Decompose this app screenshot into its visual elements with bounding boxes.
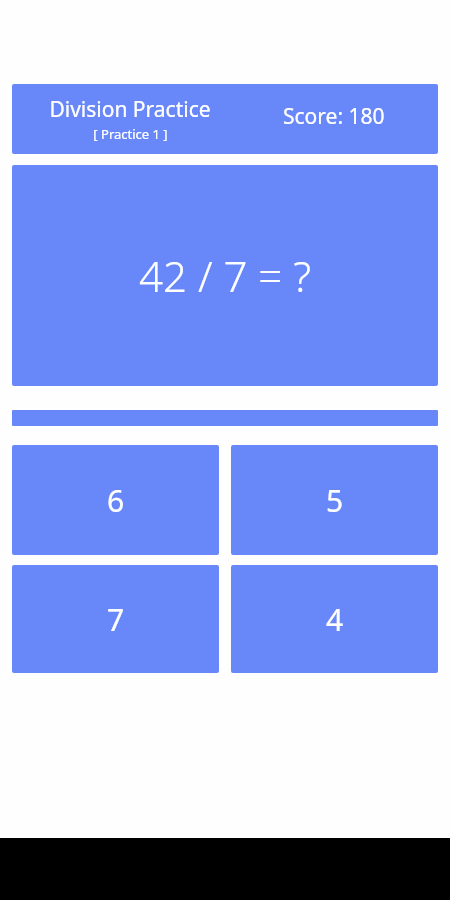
button[interactable]: Division Practice [12, 84, 438, 154]
button[interactable]: 42 / 7 = ? [12, 165, 438, 386]
button[interactable]: 6 [12, 445, 219, 555]
staticText: 7 [107, 599, 125, 640]
button[interactable]: 4 [231, 565, 438, 673]
button[interactable]: 5 [231, 445, 438, 555]
staticText: 4 [326, 599, 344, 640]
staticText: [ Practice 1 ] [93, 125, 168, 143]
staticText: 42 / 7 = ? [139, 247, 311, 304]
staticText: Score: 180 [283, 102, 385, 131]
button[interactable]: 7 [12, 565, 219, 673]
staticText: 5 [326, 480, 344, 521]
staticText: 6 [107, 480, 125, 521]
staticText: Division Practice [49, 95, 211, 124]
